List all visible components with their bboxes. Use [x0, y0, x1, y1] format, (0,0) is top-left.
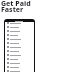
button[interactable]: Invoices: [5, 20, 34, 22]
button[interactable]: [5, 29, 34, 33]
button[interactable]: [5, 25, 34, 29]
button[interactable]: [5, 69, 34, 72]
button[interactable]: [5, 37, 34, 41]
button[interactable]: [5, 49, 34, 53]
staticText: Get Paid: [1, 0, 31, 9]
button[interactable]: [5, 53, 34, 57]
button[interactable]: [5, 65, 34, 69]
button[interactable]: [5, 21, 34, 25]
button[interactable]: [5, 61, 34, 65]
button[interactable]: [5, 41, 34, 45]
button[interactable]: [5, 57, 34, 61]
staticText: Faster: [1, 5, 24, 15]
button[interactable]: [5, 33, 34, 37]
staticText: Invoices: [15, 20, 24, 22]
button[interactable]: [5, 45, 34, 49]
